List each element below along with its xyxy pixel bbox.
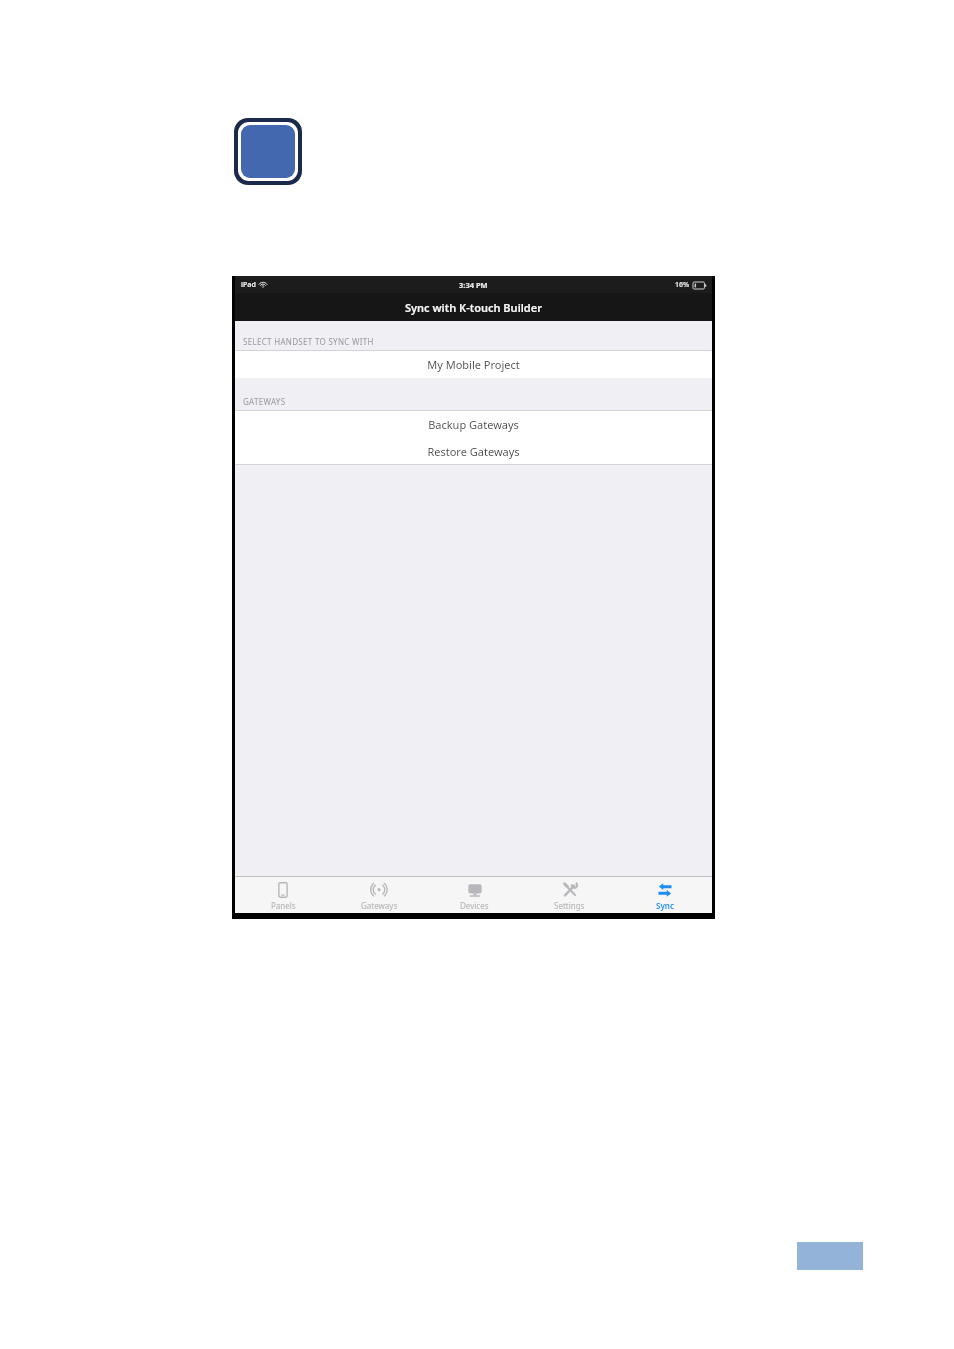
staticText: Sync [656, 900, 674, 911]
button[interactable]: Sync [617, 876, 712, 913]
staticText: Settings [554, 900, 585, 911]
staticText: Devices [460, 900, 489, 911]
staticText: Sync with K-touch Builder [405, 300, 542, 315]
staticText: iPad [241, 280, 256, 290]
staticText: Restore Gateways [427, 444, 520, 459]
staticText: Panels [271, 900, 296, 911]
staticText: 3:34 PM [459, 280, 488, 290]
staticText: Gateways [361, 900, 398, 911]
staticText: My Mobile Project [427, 357, 520, 372]
staticText: SELECT HANDSET TO SYNC WITH [243, 336, 374, 347]
button[interactable]: Devices [427, 876, 522, 913]
button[interactable]: Restore Gateways [235, 438, 712, 465]
staticText: GATEWAYS [243, 396, 286, 407]
staticText: 16% [675, 280, 690, 290]
staticText: Backup Gateways [428, 417, 519, 432]
button[interactable]: App icon [241, 125, 295, 178]
button[interactable]: Backup Gateways [235, 411, 712, 438]
button[interactable]: My Mobile Project [235, 351, 712, 378]
button[interactable]: Panels [235, 876, 331, 913]
button[interactable]: Settings [522, 876, 617, 913]
button[interactable]: Gateways [331, 876, 427, 913]
